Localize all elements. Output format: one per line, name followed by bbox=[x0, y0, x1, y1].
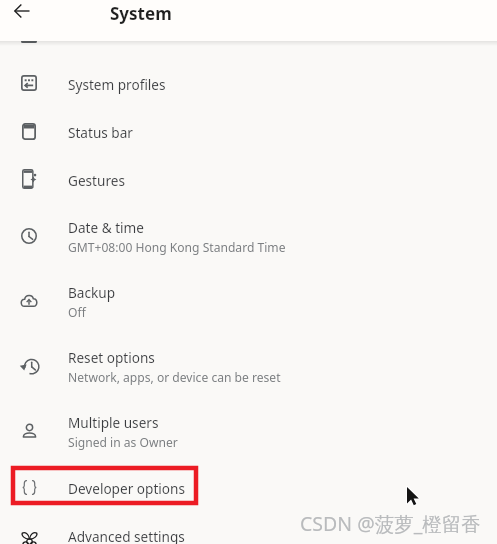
button[interactable]: Reset options bbox=[0, 334, 497, 399]
button[interactable]: Date & time bbox=[0, 204, 497, 269]
button[interactable]: System profiles bbox=[0, 60, 497, 108]
staticText: Multiple users bbox=[68, 413, 159, 432]
staticText: Backup bbox=[68, 283, 116, 302]
staticText: Gestures bbox=[68, 171, 125, 190]
staticText: GMT+08:00 Hong Kong Standard Time bbox=[68, 239, 286, 255]
staticText: Developer options bbox=[68, 479, 185, 498]
button[interactable]: Multiple users bbox=[0, 399, 497, 464]
button[interactable]: Developer options bbox=[0, 464, 497, 512]
staticText: System bbox=[110, 2, 172, 25]
button[interactable]: Back bbox=[11, 0, 33, 22]
staticText: System profiles bbox=[68, 75, 166, 94]
staticText: Signed in as Owner bbox=[68, 434, 178, 450]
staticText: Reset options bbox=[68, 348, 155, 367]
staticText: Date & time bbox=[68, 218, 144, 237]
staticText: Network, apps, or device can be reset bbox=[68, 369, 281, 385]
button[interactable]: Backup bbox=[0, 269, 497, 334]
button[interactable]: Gestures bbox=[0, 156, 497, 204]
button[interactable]: Advanced settings bbox=[0, 512, 497, 544]
button[interactable]: Status bar bbox=[0, 108, 497, 156]
staticText: Off bbox=[68, 304, 86, 320]
staticText: Advanced settings bbox=[68, 527, 185, 544]
staticText: CSDN @菠萝_橙留香 bbox=[300, 510, 481, 537]
staticText: Status bar bbox=[68, 123, 133, 142]
